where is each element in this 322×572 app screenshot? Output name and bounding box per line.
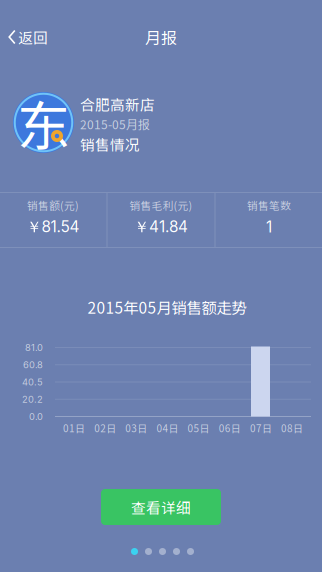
- staticText: 04日: [156, 421, 178, 435]
- staticText: ￥81.54: [26, 217, 79, 237]
- staticText: 08日: [281, 421, 303, 435]
- staticText: 81.0: [25, 342, 43, 353]
- button[interactable]: Page 4: [173, 548, 180, 555]
- button[interactable]: Page 1: [131, 548, 138, 555]
- staticText: 02日: [94, 421, 116, 435]
- staticText: 06日: [219, 421, 241, 435]
- staticText: 1: [266, 218, 272, 236]
- staticText: 01日: [63, 421, 85, 435]
- button[interactable]: 返回: [0, 15, 56, 59]
- button[interactable]: 销售额(元): [0, 193, 106, 247]
- staticText: 05日: [188, 421, 210, 435]
- staticText: 返回: [18, 26, 48, 48]
- button[interactable]: 销售毛利(元): [107, 193, 214, 247]
- staticText: 东: [17, 84, 70, 161]
- staticText: 销售毛利(元): [129, 197, 192, 213]
- staticText: 销售笔数: [247, 197, 291, 213]
- button[interactable]: 查看详细: [101, 489, 221, 525]
- staticText: 合肥高新店: [80, 93, 155, 115]
- staticText: 销售情况: [80, 133, 140, 155]
- button[interactable]: Page 2: [145, 548, 152, 555]
- staticText: 60.8: [23, 359, 43, 370]
- staticText: 查看详细: [131, 496, 191, 518]
- button[interactable]: Page 3: [159, 548, 166, 555]
- staticText: 0.0: [29, 411, 43, 422]
- staticText: 月报: [145, 25, 177, 49]
- button[interactable]: 销售笔数: [215, 193, 322, 247]
- staticText: 20.2: [22, 394, 43, 405]
- staticText: 2015年05月销售额走势: [87, 296, 246, 318]
- staticText: 03日: [125, 421, 147, 435]
- staticText: 2015-05月报: [80, 115, 150, 133]
- button[interactable]: Page 5: [187, 548, 194, 555]
- button[interactable]: 东: [0, 92, 322, 164]
- staticText: 销售额(元): [27, 197, 79, 213]
- staticText: 40.5: [22, 376, 43, 388]
- staticText: ￥41.84: [134, 217, 188, 237]
- staticText: 07日: [250, 421, 272, 435]
